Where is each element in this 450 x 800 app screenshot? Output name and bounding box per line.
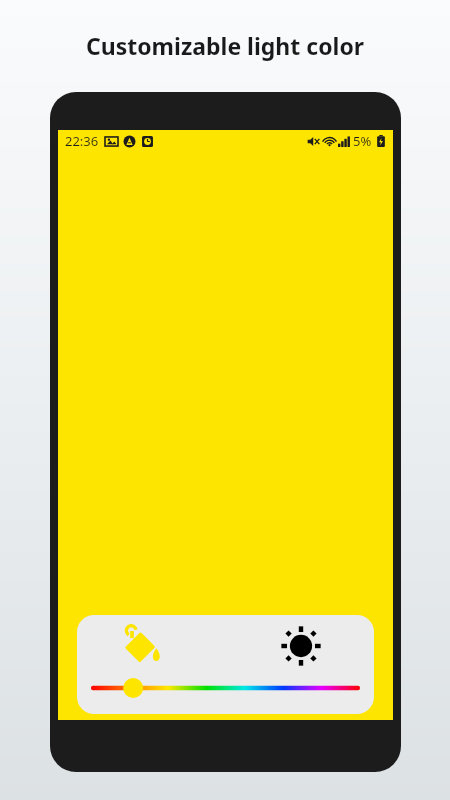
- staticText: 22:36: [65, 132, 99, 150]
- button[interactable]: Choose light color: [115, 617, 173, 675]
- button[interactable]: Color slider: [77, 675, 374, 701]
- button[interactable]: Brightness: [272, 617, 330, 675]
- staticText: Customizable light color: [0, 30, 450, 61]
- staticText: 5%: [353, 132, 372, 150]
